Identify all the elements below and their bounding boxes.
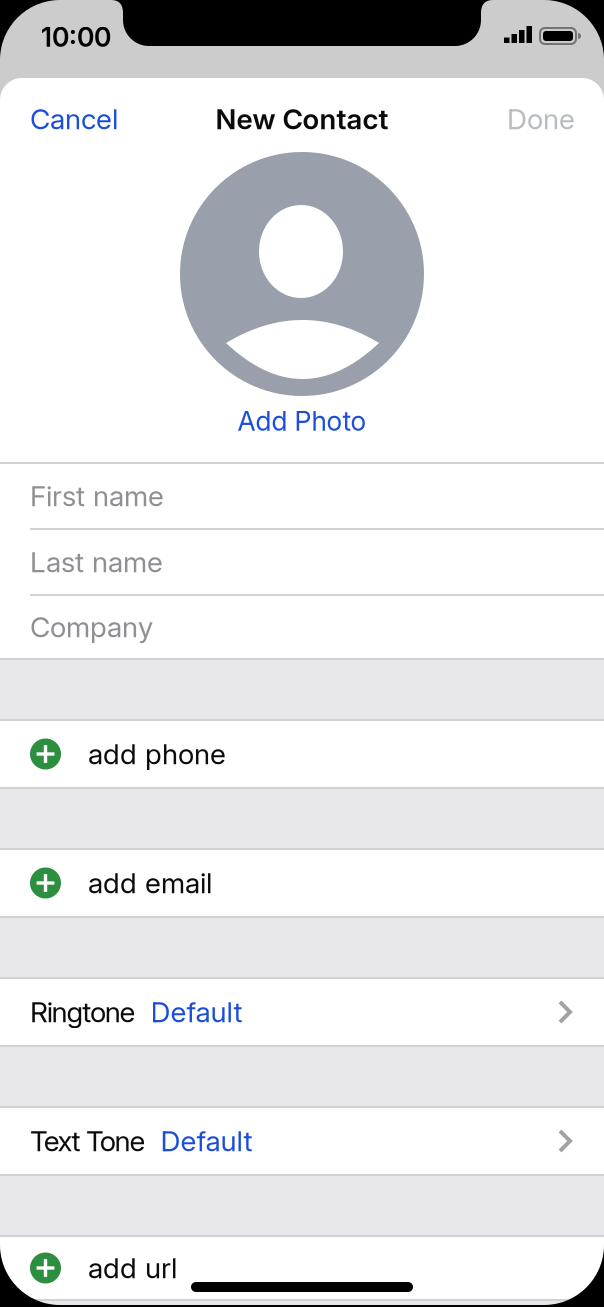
button[interactable]: Ringtone	[0, 979, 604, 1045]
staticText: Done	[507, 102, 575, 135]
staticText: New Contact	[215, 102, 388, 135]
button[interactable]: Text Tone	[0, 1108, 604, 1174]
button[interactable]: Last name	[0, 530, 604, 594]
staticText: Default	[160, 1124, 252, 1157]
staticText: add url	[88, 1251, 177, 1284]
button[interactable]: add phone	[0, 721, 604, 787]
staticText: Cancel	[30, 102, 118, 135]
staticText: Default	[151, 995, 243, 1028]
button[interactable]: add email	[0, 850, 604, 916]
button[interactable]: add url	[0, 1237, 604, 1299]
button[interactable]: First name	[0, 464, 604, 528]
staticText: Last name	[30, 545, 163, 578]
staticText: First name	[30, 479, 164, 512]
button[interactable]: Cancel	[30, 102, 118, 135]
button[interactable]: Add Photo	[180, 150, 424, 440]
staticText: Company	[30, 610, 153, 643]
staticText: Text Tone	[30, 1124, 145, 1157]
staticText: add phone	[88, 737, 226, 770]
staticText: Add Photo	[237, 405, 366, 437]
staticText: add email	[88, 866, 212, 899]
staticText: Ringtone	[30, 995, 136, 1028]
button[interactable]: Done	[507, 102, 575, 135]
button[interactable]: Company	[0, 596, 604, 658]
staticText: 10:00	[41, 21, 111, 53]
